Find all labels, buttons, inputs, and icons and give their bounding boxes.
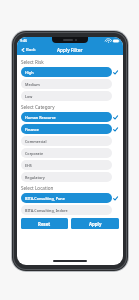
button[interactable]: Low bbox=[21, 91, 112, 101]
staticText: Back bbox=[26, 47, 36, 53]
button[interactable]: Reset bbox=[21, 218, 68, 229]
button[interactable]: BITA-Consulting, Indore bbox=[21, 205, 112, 215]
staticText: Human Resource bbox=[25, 115, 56, 120]
staticText: Low bbox=[25, 94, 33, 99]
button[interactable]: Corporate bbox=[21, 148, 112, 158]
button[interactable]: High bbox=[21, 67, 112, 77]
staticText: 9:46 bbox=[20, 38, 28, 43]
staticText: BITA-Consulting, Pune bbox=[25, 196, 65, 201]
staticText: High bbox=[25, 70, 34, 75]
button[interactable]: Apply bbox=[71, 218, 119, 229]
button[interactable]: Back bbox=[19, 46, 38, 54]
staticText: Select Risk bbox=[21, 59, 44, 65]
staticText: Select Location bbox=[21, 185, 54, 191]
button[interactable]: Finance bbox=[21, 124, 112, 134]
staticText: Finance bbox=[25, 127, 39, 132]
button[interactable]: Commercial bbox=[21, 136, 112, 146]
staticText: Apply bbox=[89, 221, 102, 227]
staticText: EHS bbox=[25, 163, 32, 168]
staticText: Corporate bbox=[25, 151, 44, 156]
staticText: Apply Filter bbox=[57, 47, 83, 53]
staticText: Commercial bbox=[25, 139, 47, 144]
staticText: Select Category bbox=[21, 104, 55, 110]
staticText: BITA-Consulting, Indore bbox=[25, 208, 68, 213]
button[interactable]: Regulatory bbox=[21, 172, 112, 182]
staticText: Regulatory bbox=[25, 175, 45, 180]
button[interactable]: EHS bbox=[21, 160, 112, 170]
button[interactable]: BITA-Consulting, Pune bbox=[21, 193, 112, 203]
staticText: Medium bbox=[25, 82, 40, 87]
staticText: Reset bbox=[38, 221, 51, 227]
button[interactable]: Medium bbox=[21, 79, 112, 89]
button[interactable]: Human Resource bbox=[21, 112, 112, 122]
